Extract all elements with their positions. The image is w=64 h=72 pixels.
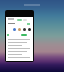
button[interactable]: Contact (13, 28, 16, 31)
button[interactable]: Contact (23, 28, 26, 31)
button[interactable] (21, 34, 27, 36)
button[interactable] (6, 17, 33, 22)
button[interactable]: Contact (18, 28, 21, 31)
button[interactable]: Contact (28, 28, 31, 31)
